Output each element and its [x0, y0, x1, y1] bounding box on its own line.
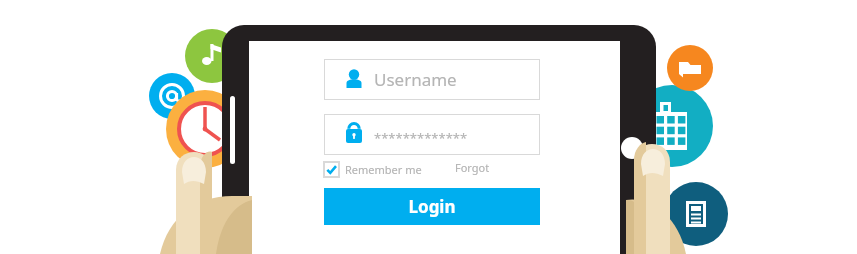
button[interactable]: Remember me [324, 160, 424, 178]
staticText: Login [408, 195, 456, 218]
button[interactable]: Username [324, 59, 540, 100]
button[interactable]: ************* [324, 114, 540, 155]
staticText: ************* [374, 129, 468, 147]
button[interactable]: Login [324, 188, 540, 225]
staticText: Remember me [345, 162, 422, 177]
staticText: Username [374, 68, 457, 91]
staticText: Forgot Password [455, 160, 540, 178]
button[interactable]: Forgot Password [455, 160, 540, 178]
